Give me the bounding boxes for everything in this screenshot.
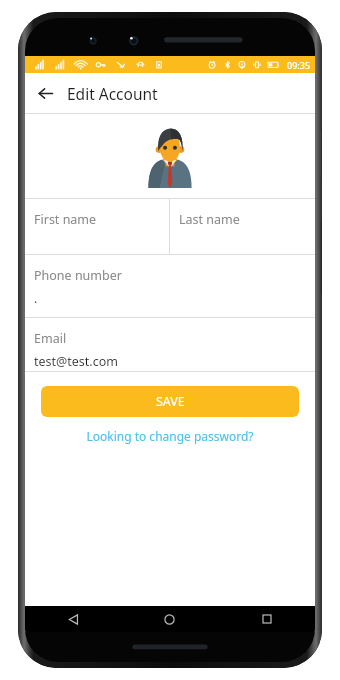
button[interactable]: Last name <box>170 199 315 254</box>
button[interactable]: Back <box>25 606 121 632</box>
button[interactable]: Email <box>25 318 315 371</box>
button[interactable]: Looking to change password? <box>25 425 315 447</box>
button[interactable]: Power button <box>320 132 322 178</box>
button[interactable]: Volume buttons <box>320 222 322 294</box>
button[interactable]: Change profile photo <box>144 124 196 188</box>
staticText: test@test.com <box>34 353 118 370</box>
staticText: First name <box>34 211 97 228</box>
button[interactable]: Phone number <box>25 255 315 317</box>
staticText: Edit Account <box>67 83 158 104</box>
staticText: Email <box>34 330 67 347</box>
staticText: Phone number <box>34 267 122 284</box>
staticText: Looking to change password? <box>86 428 254 444</box>
button[interactable]: First name <box>25 199 169 254</box>
button[interactable]: Recent apps <box>218 606 315 632</box>
button[interactable]: Back <box>32 80 58 106</box>
button[interactable]: Home <box>121 606 218 632</box>
staticText: SAVE <box>156 393 185 410</box>
staticText: Last name <box>179 211 240 228</box>
staticText: . <box>34 290 38 307</box>
button[interactable]: SAVE <box>41 386 299 417</box>
staticText: 09:35 <box>287 59 311 71</box>
